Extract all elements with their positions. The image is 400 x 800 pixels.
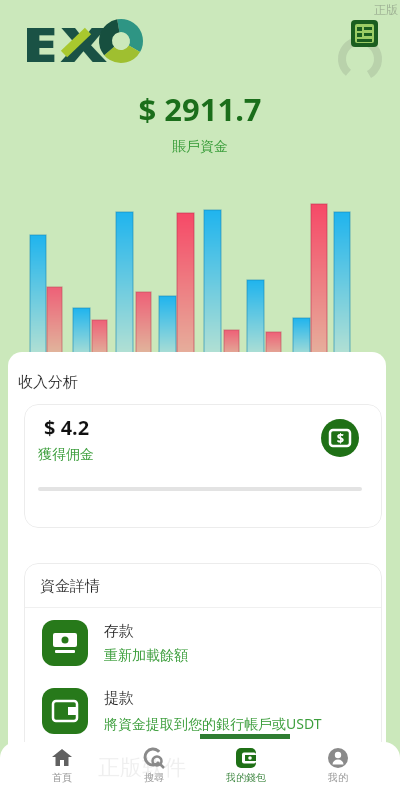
button[interactable]: 搜尋 bbox=[118, 746, 190, 800]
staticText: 正版软件 bbox=[98, 754, 186, 782]
staticText: $ bbox=[337, 430, 344, 446]
staticText: $ 4.2 bbox=[44, 414, 90, 441]
staticText: 資金詳情 bbox=[40, 577, 100, 596]
staticText: 我的錢包 bbox=[226, 771, 266, 784]
staticText: 收入分析 bbox=[18, 373, 78, 392]
staticText: EX bbox=[22, 12, 110, 68]
button[interactable]: EX bbox=[22, 12, 152, 68]
staticText: 將資金提取到您的銀行帳戶或USDT bbox=[104, 714, 322, 733]
staticText: 搜尋 bbox=[144, 771, 164, 784]
staticText: 存款 bbox=[104, 622, 134, 641]
button[interactable]: 我的錢包 bbox=[210, 746, 282, 800]
staticText: $ 2911.7 bbox=[0, 88, 400, 130]
staticText: 我的 bbox=[328, 771, 348, 784]
staticText: 提款 bbox=[104, 689, 134, 708]
button[interactable]: 首頁 bbox=[26, 746, 98, 800]
staticText: 獲得佣金 bbox=[38, 446, 94, 464]
staticText: 首頁 bbox=[52, 771, 72, 784]
button[interactable] bbox=[351, 20, 378, 47]
staticText: 正版 bbox=[374, 2, 398, 17]
staticText: 重新加載餘額 bbox=[104, 647, 188, 665]
button[interactable]: $ bbox=[321, 419, 359, 457]
staticText: 賬戶資金 bbox=[0, 138, 400, 156]
button[interactable]: 我的 bbox=[302, 746, 374, 800]
button[interactable]: 存款 bbox=[42, 620, 372, 666]
button[interactable]: 提款 bbox=[42, 688, 372, 734]
